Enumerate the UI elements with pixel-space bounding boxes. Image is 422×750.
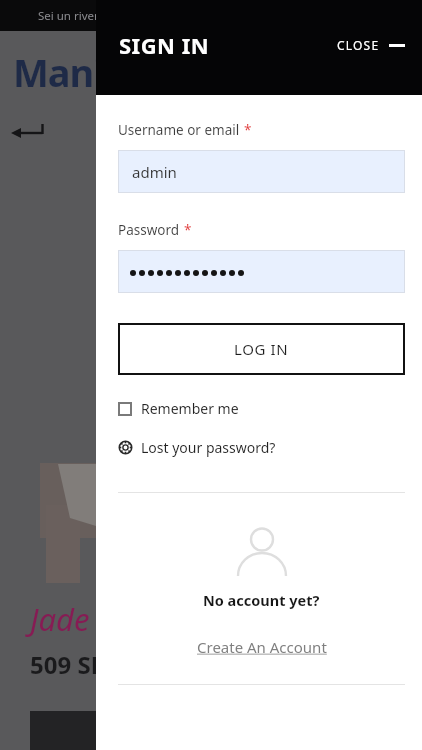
- button[interactable]: admin: [118, 150, 405, 193]
- staticText: SIGN IN: [119, 30, 210, 60]
- button[interactable]: [11, 121, 45, 137]
- staticText: admin: [132, 162, 177, 182]
- staticText: Jade: [30, 598, 90, 640]
- staticText: Sei un rivenditore: [38, 8, 96, 24]
- staticText: Mani: [13, 46, 96, 98]
- button[interactable]: [118, 250, 405, 293]
- button[interactable]: Remember me: [118, 399, 239, 418]
- staticText: Password: [118, 221, 180, 239]
- button[interactable]: Create An Account: [197, 637, 327, 657]
- staticText: Remember me: [141, 399, 239, 418]
- button[interactable]: LOG IN: [118, 323, 405, 375]
- staticText: *: [184, 221, 192, 239]
- staticText: *: [244, 121, 252, 139]
- button[interactable]: CLOSE: [337, 37, 405, 53]
- button[interactable]: Lost your password?: [118, 438, 276, 457]
- staticText: No account yet?: [203, 590, 320, 610]
- staticText: 509 SLI: [30, 648, 96, 681]
- staticText: Lost your password?: [141, 438, 276, 457]
- staticText: LOG IN: [234, 339, 289, 359]
- staticText: Username or email: [118, 121, 240, 139]
- staticText: CLOSE: [337, 37, 380, 53]
